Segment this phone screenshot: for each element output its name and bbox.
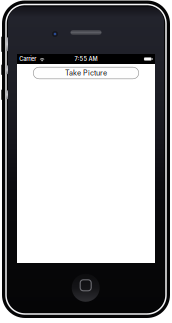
button[interactable]: Home	[72, 274, 100, 302]
button[interactable]: Take Picture	[33, 67, 139, 79]
staticText: 7:55 AM	[74, 56, 97, 62]
staticText: Take Picture	[65, 69, 107, 77]
staticText: Carrier	[19, 56, 36, 62]
